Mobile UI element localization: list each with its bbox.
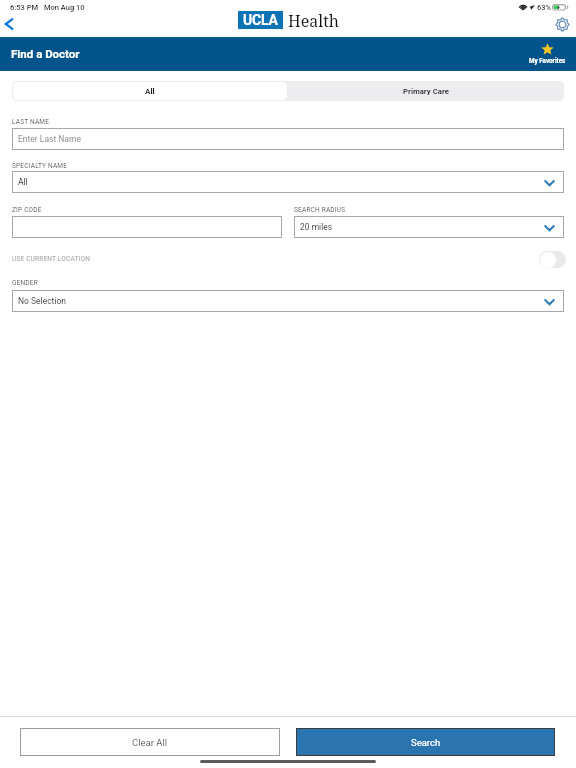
button[interactable]: Settings [552, 12, 575, 35]
button[interactable]: Search [296, 728, 555, 756]
button[interactable]: Clear All [20, 728, 280, 756]
staticText: All [18, 177, 28, 187]
staticText: Primary Care [403, 87, 449, 96]
staticText: 63% [537, 3, 552, 12]
staticText: ZIP CODE [12, 206, 42, 214]
button[interactable]: All [13, 82, 287, 100]
staticText: 6:53 PM [10, 3, 38, 12]
button[interactable]: 20 miles [294, 216, 564, 238]
button[interactable]: Primary Care [288, 81, 564, 101]
button[interactable]: No Selection [12, 290, 564, 312]
staticText: 20 miles [300, 222, 333, 232]
staticText: Clear All [132, 737, 168, 748]
button[interactable] [12, 216, 282, 238]
staticText: No Selection [18, 296, 66, 306]
staticText: Search [411, 737, 441, 748]
staticText: UCLA [243, 12, 278, 28]
staticText: Find a Doctor [11, 47, 80, 60]
staticText: SEARCH RADIUS [294, 206, 346, 214]
staticText: Enter Last Name [18, 134, 81, 144]
button[interactable]: All [12, 171, 564, 193]
button[interactable]: My Favorites [524, 41, 570, 66]
staticText: All [145, 87, 155, 96]
button[interactable]: Enter Last Name [12, 128, 564, 150]
staticText: SPECIALTY NAME [12, 162, 68, 170]
staticText: My Favorites [529, 57, 566, 64]
staticText: Mon Aug 10 [44, 3, 85, 12]
button[interactable]: USE CURRENT LOCATION [12, 249, 564, 269]
staticText: Health [288, 10, 340, 32]
button[interactable]: Back [0, 14, 22, 34]
staticText: GENDER [12, 279, 38, 287]
staticText: USE CURRENT LOCATION [12, 255, 91, 263]
staticText: LAST NAME [12, 118, 50, 126]
